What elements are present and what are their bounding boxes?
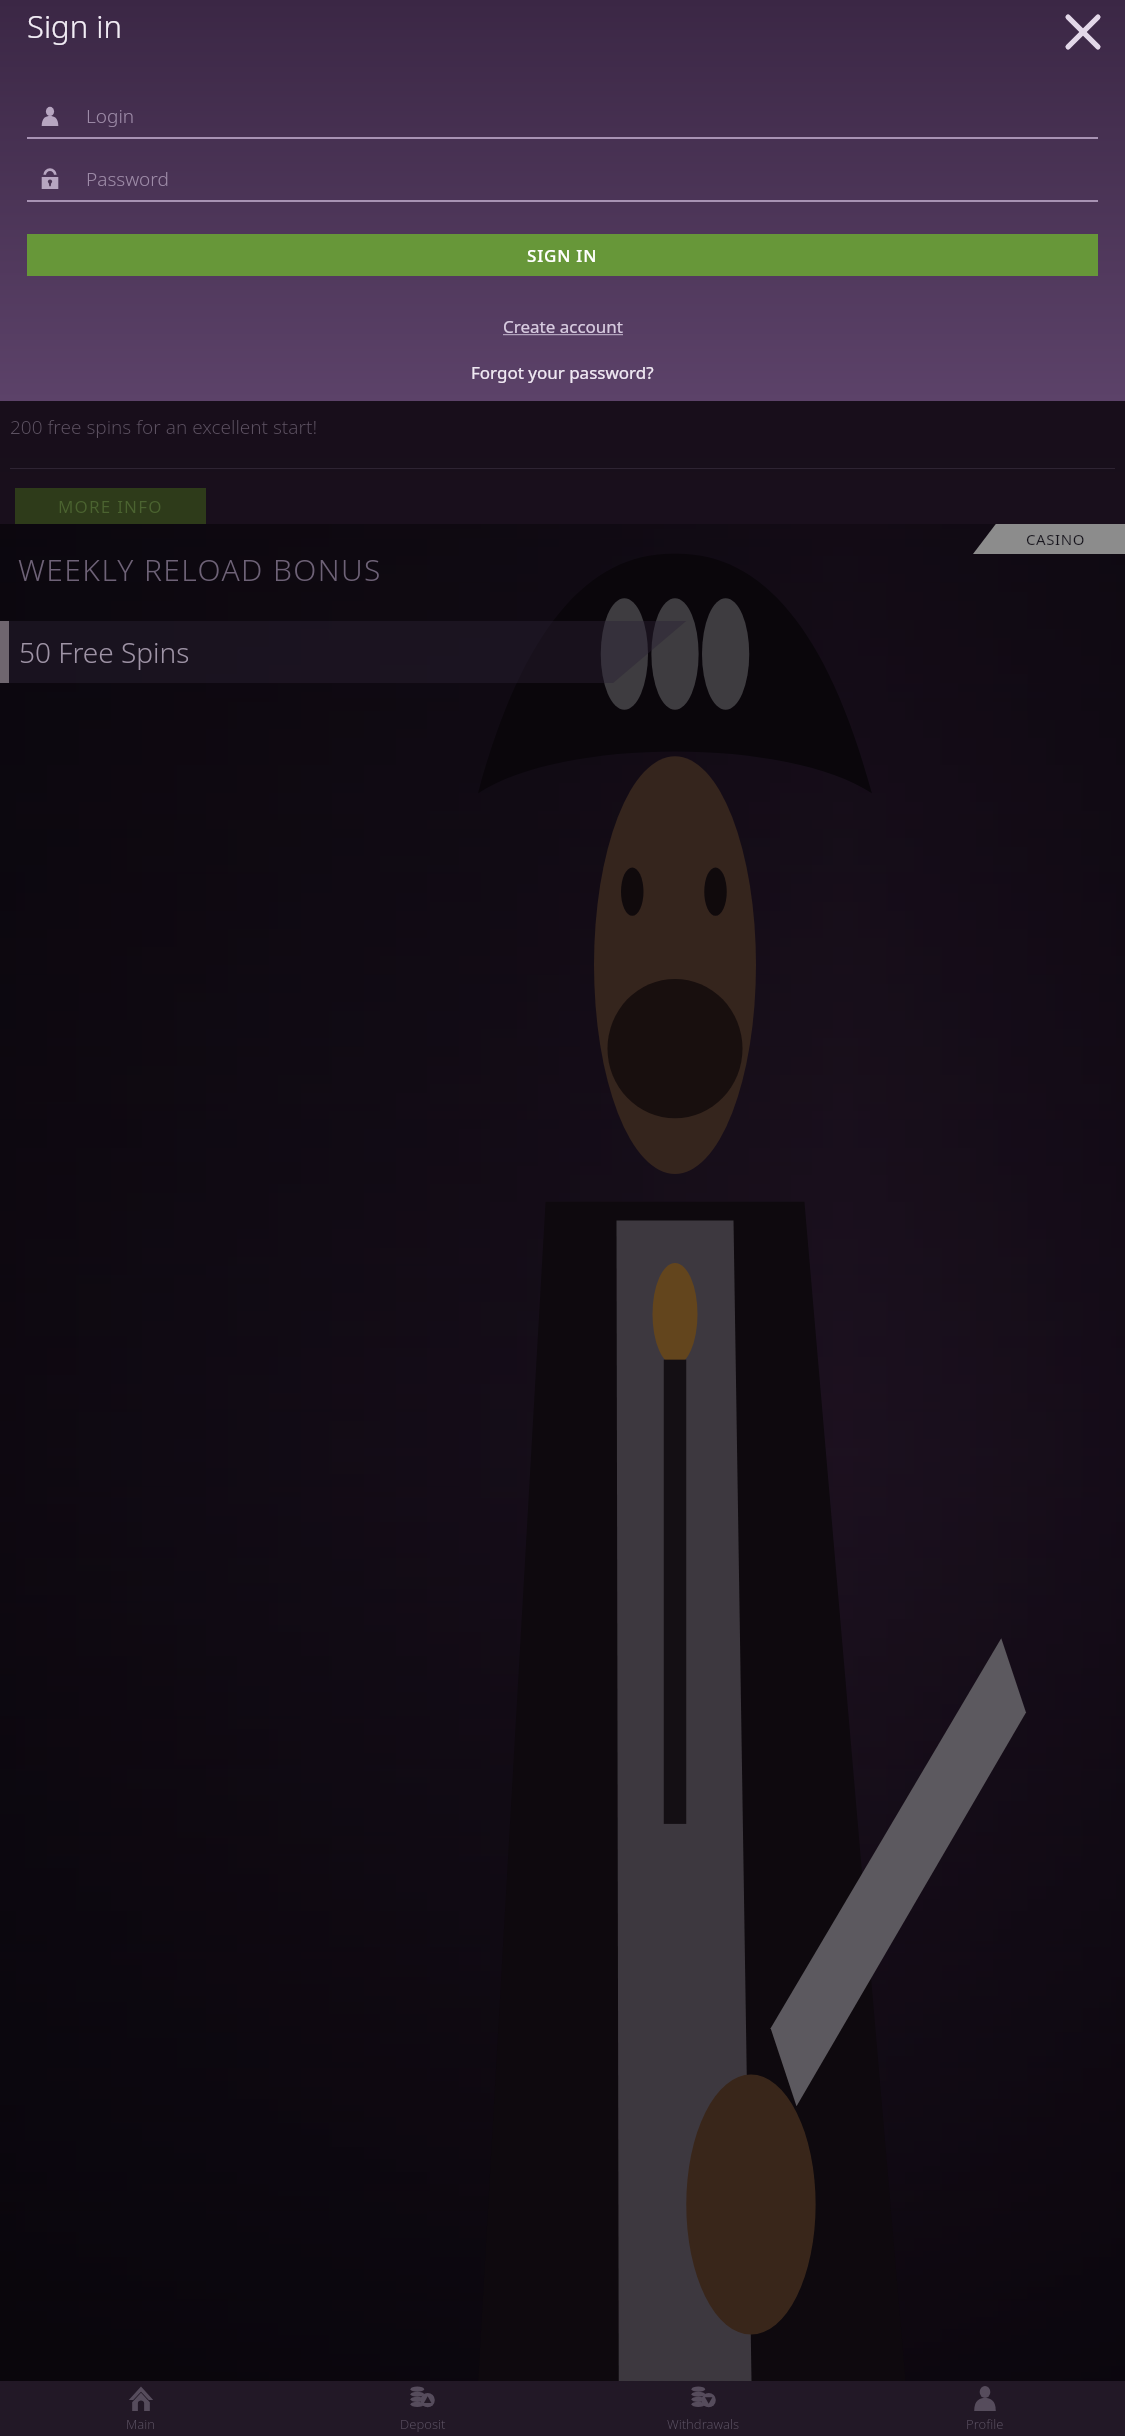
staticText: Password [86,166,169,192]
staticText: 200 free spins for an excellent start! [10,414,318,440]
staticText: Forgot your password? [471,361,654,384]
button[interactable]: Main [0,2381,282,2436]
staticText: Main [126,2415,156,2433]
button[interactable]: SIGN IN [27,234,1098,276]
button[interactable]: CASINO [0,524,1125,2381]
button[interactable]: Withdrawals [563,2381,844,2436]
staticText: 50 Free Spins [19,633,190,671]
staticText: Login [86,103,135,129]
button[interactable]: Login [27,95,1098,139]
staticText: WEEKLY RELOAD BONUS [18,549,382,590]
staticText: Profile [966,2415,1004,2433]
button[interactable]: Forgot your password? [459,356,666,389]
staticText: MORE INFO [58,495,163,518]
button[interactable]: Create account [491,310,635,343]
staticText: Sign in [27,5,122,47]
button[interactable]: Profile [844,2381,1125,2436]
staticText: SIGN IN [527,244,598,267]
button[interactable]: Deposit [282,2381,563,2436]
staticText: Deposit [400,2415,446,2433]
staticText: Create account [503,315,623,338]
staticText: Withdrawals [667,2415,740,2433]
staticText: CASINO [1026,529,1086,549]
button[interactable]: MORE INFO [15,488,206,524]
button[interactable]: Close [1055,4,1111,60]
button[interactable]: Password [27,158,1098,202]
